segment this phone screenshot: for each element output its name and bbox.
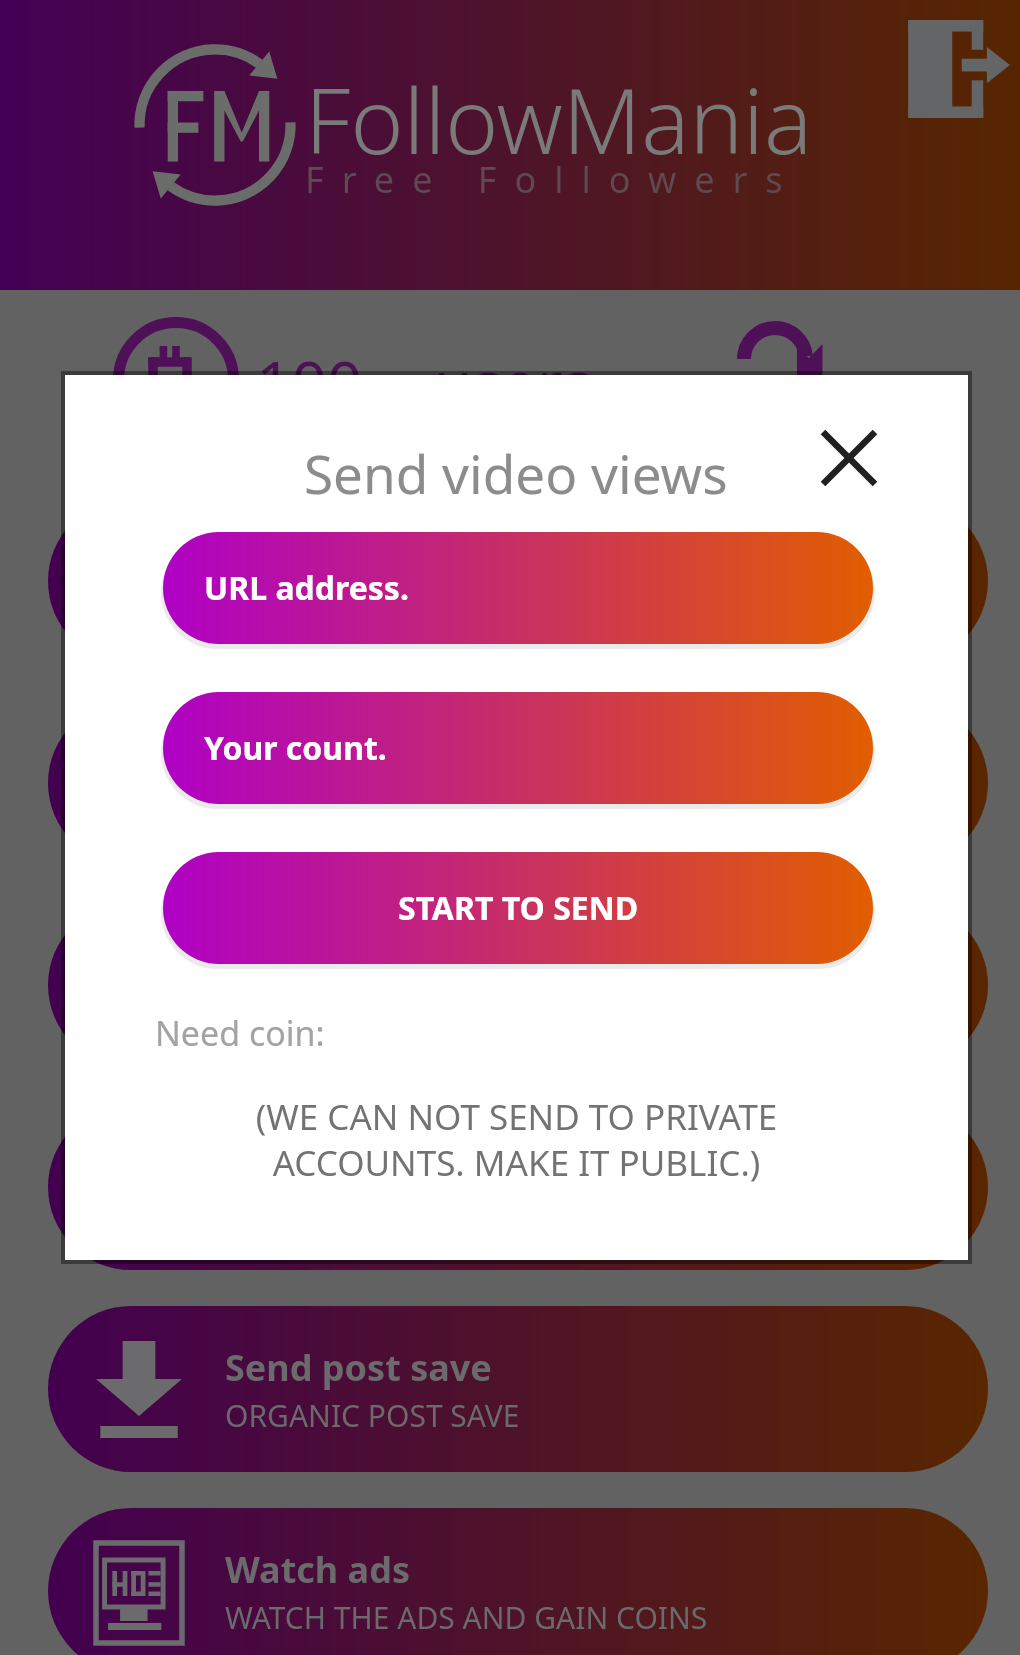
staticText: Send video views — [304, 437, 728, 509]
staticText: Send comments — [225, 939, 512, 988]
staticText: 100 — [256, 340, 363, 424]
staticText: (WE CAN NOT SEND TO PRIVATE ACCOUNTS. MA… — [65, 1093, 968, 1186]
button[interactable]: Close — [795, 404, 903, 512]
staticText: URL address. — [204, 566, 409, 610]
staticText: Send followers — [225, 535, 488, 584]
staticText: START TO SEND — [398, 886, 639, 930]
staticText: ORGANIC LIKES — [225, 789, 446, 830]
staticText: ORGANIC FOLLOWERS — [225, 587, 541, 628]
button[interactable]: Logout — [905, 20, 1010, 118]
button[interactable]: Send likes — [48, 700, 988, 866]
staticText: Send post save — [225, 1343, 492, 1392]
button[interactable]: Send video views — [48, 1104, 988, 1270]
button[interactable]: Watch ads — [48, 1508, 988, 1655]
button[interactable]: Coins — [113, 317, 239, 443]
staticText: WATCH THE ADS AND GAIN COINS — [225, 1597, 708, 1638]
button[interactable]: Your count. — [163, 692, 873, 804]
staticText: Send likes — [225, 737, 406, 786]
staticText: Free Followers — [305, 155, 801, 204]
button[interactable]: Send comments — [48, 902, 988, 1068]
button[interactable]: Send post save — [48, 1306, 988, 1472]
button[interactable]: Send followers — [48, 498, 988, 664]
staticText: ORGANIC COMMENTS — [225, 991, 537, 1032]
button[interactable]: Refresh — [735, 314, 835, 414]
staticText: Watch ads — [225, 1545, 411, 1594]
staticText: Send video views — [225, 1141, 531, 1190]
staticText: users — [434, 340, 593, 424]
button[interactable]: URL address. — [163, 532, 873, 644]
staticText: Need coin: — [155, 1010, 325, 1056]
staticText: ORGANIC POST SAVE — [225, 1395, 520, 1436]
staticText: FollowMania — [305, 58, 813, 181]
button[interactable]: START TO SEND — [163, 852, 873, 964]
staticText: Your count. — [204, 726, 387, 770]
